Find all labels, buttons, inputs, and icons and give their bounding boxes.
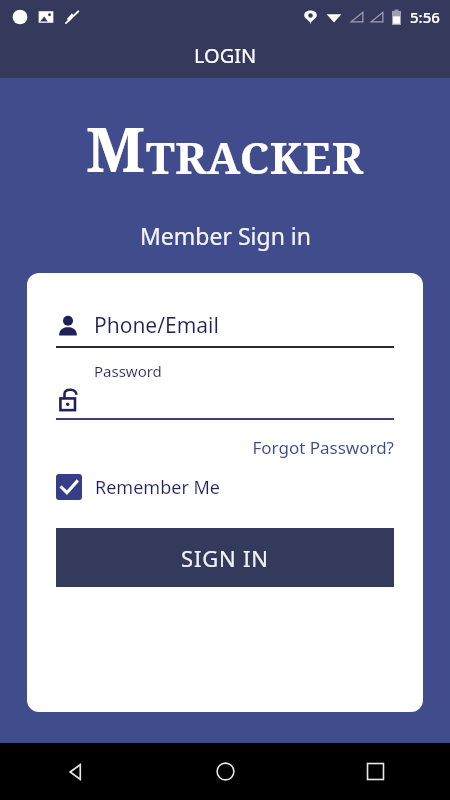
other: Password — [56, 387, 82, 413]
staticText: Password — [94, 361, 162, 381]
staticText: Member Sign in — [140, 220, 311, 251]
staticText: Phone/Email — [94, 311, 219, 340]
staticText: 5:56 — [410, 7, 440, 27]
staticText: Remember Me — [95, 475, 220, 500]
staticText: TRACKER — [146, 127, 364, 187]
staticText: SIGN IN — [181, 543, 269, 573]
staticText: LOGIN — [194, 42, 257, 69]
other: Account — [56, 314, 80, 338]
button[interactable]: Remember Me — [56, 474, 220, 500]
button[interactable]: Password — [56, 387, 394, 413]
button[interactable]: SIGN IN — [56, 528, 394, 587]
button[interactable]: Home — [150, 743, 300, 800]
button[interactable]: Recent apps — [300, 743, 450, 800]
staticText: M — [86, 106, 146, 190]
button[interactable]: Forgot Password? — [252, 436, 394, 459]
button[interactable]: Account — [56, 311, 394, 340]
button[interactable]: Back — [0, 743, 150, 800]
